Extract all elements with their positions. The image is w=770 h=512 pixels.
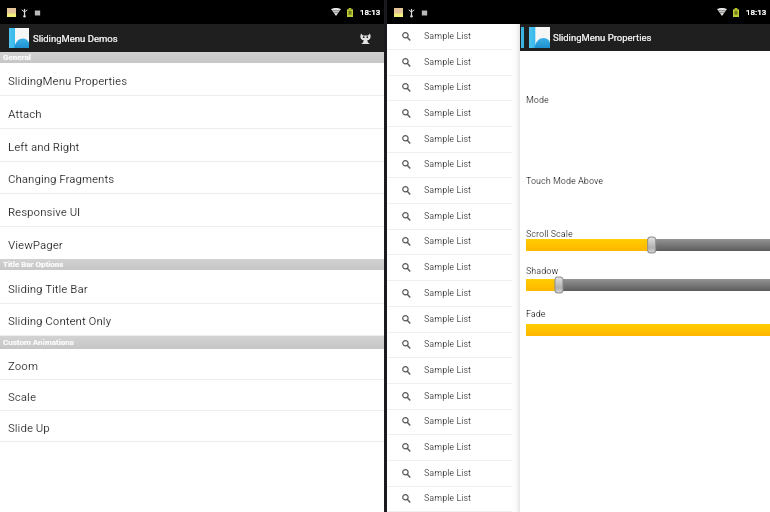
staticText: Sample List xyxy=(424,185,472,196)
staticText: Slide Up xyxy=(8,421,50,434)
button[interactable]: Sample List xyxy=(387,50,512,76)
button[interactable]: Sliding Title Bar xyxy=(0,271,384,304)
button[interactable]: Sample List xyxy=(387,435,512,461)
staticText: Zoom xyxy=(8,359,38,372)
button[interactable]: Sample List xyxy=(387,152,512,178)
staticText: Custom Animations xyxy=(3,338,74,347)
button[interactable]: Responsive UI xyxy=(0,194,384,227)
staticText: Scroll Scale xyxy=(526,229,573,240)
button[interactable]: Sliding Content Only xyxy=(0,303,384,336)
staticText: Sample List xyxy=(424,468,472,479)
button[interactable]: Slide Up xyxy=(0,411,384,442)
staticText: Fade xyxy=(526,309,546,320)
staticText: Sample List xyxy=(424,288,472,299)
button[interactable]: Sample List xyxy=(387,486,512,512)
button[interactable]: Sample List xyxy=(387,255,512,281)
button[interactable]: Sample List xyxy=(387,127,512,153)
staticText: Sample List xyxy=(424,262,472,273)
staticText: 18:13 xyxy=(360,8,381,17)
staticText: Scale xyxy=(8,390,36,403)
staticText: SlidingMenu Demos xyxy=(33,33,118,44)
button[interactable]: Attach xyxy=(0,96,384,129)
button[interactable]: Sample List xyxy=(387,332,512,358)
staticText: Responsive UI xyxy=(8,205,81,218)
button[interactable]: SlidingMenu Properties xyxy=(0,63,384,96)
button[interactable]: Sample List xyxy=(387,409,512,435)
staticText: Sample List xyxy=(424,339,472,350)
staticText: Title Bar Options xyxy=(3,260,64,269)
staticText: Sample List xyxy=(424,211,472,222)
staticText: Mode xyxy=(526,95,549,106)
staticText: SlidingMenu Properties xyxy=(553,32,652,43)
button[interactable]: SlidingMenu Properties xyxy=(520,24,770,51)
button[interactable]: Slider xyxy=(526,237,770,253)
button[interactable]: Sample List xyxy=(387,358,512,384)
button[interactable]: SlidingMenu Demos xyxy=(0,24,384,52)
button[interactable]: Left and Right xyxy=(0,129,384,162)
button[interactable]: Sample List xyxy=(387,24,512,50)
button[interactable]: Changing Fragments xyxy=(0,161,384,194)
staticText: Sample List xyxy=(424,314,472,325)
staticText: Changing Fragments xyxy=(8,172,115,185)
staticText: SlidingMenu Properties xyxy=(8,74,128,87)
staticText: Sample List xyxy=(424,159,472,170)
staticText: Sample List xyxy=(424,391,472,402)
staticText: Left and Right xyxy=(8,140,80,153)
staticText: Sample List xyxy=(424,442,472,453)
button[interactable]: Sample List xyxy=(387,178,512,204)
staticText: Sample List xyxy=(424,416,472,427)
button[interactable]: Sample List xyxy=(387,204,512,230)
button[interactable]: Scale xyxy=(0,380,384,411)
staticText: Sliding Content Only xyxy=(8,314,112,327)
staticText: Attach xyxy=(8,107,42,120)
button[interactable]: Sample List xyxy=(387,461,512,487)
staticText: ViewPager xyxy=(8,238,63,251)
staticText: Sample List xyxy=(424,31,472,42)
button[interactable]: Sample List xyxy=(387,229,512,255)
staticText: Sample List xyxy=(424,365,472,376)
staticText: Sliding Title Bar xyxy=(8,282,88,295)
button[interactable]: GitHub xyxy=(352,25,378,51)
staticText: Sample List xyxy=(424,493,472,504)
staticText: Touch Mode Above xyxy=(526,176,604,187)
staticText: Sample List xyxy=(424,236,472,247)
staticText: Sample List xyxy=(424,108,472,119)
staticText: Sample List xyxy=(424,134,472,145)
button[interactable]: Slider xyxy=(526,277,770,293)
staticText: General xyxy=(3,53,31,62)
button[interactable]: Zoom xyxy=(0,349,384,380)
button[interactable]: Sample List xyxy=(387,384,512,410)
staticText: 18:13 xyxy=(746,8,767,17)
button[interactable]: Slider xyxy=(526,322,770,338)
button[interactable]: Sample List xyxy=(387,307,512,333)
staticText: Sample List xyxy=(424,57,472,68)
button[interactable]: Sample List xyxy=(387,75,512,101)
button[interactable]: Sample List xyxy=(387,101,512,127)
button[interactable]: Sample List xyxy=(387,281,512,307)
staticText: Shadow xyxy=(526,266,559,277)
staticText: Sample List xyxy=(424,82,472,93)
button[interactable]: ViewPager xyxy=(0,227,384,260)
